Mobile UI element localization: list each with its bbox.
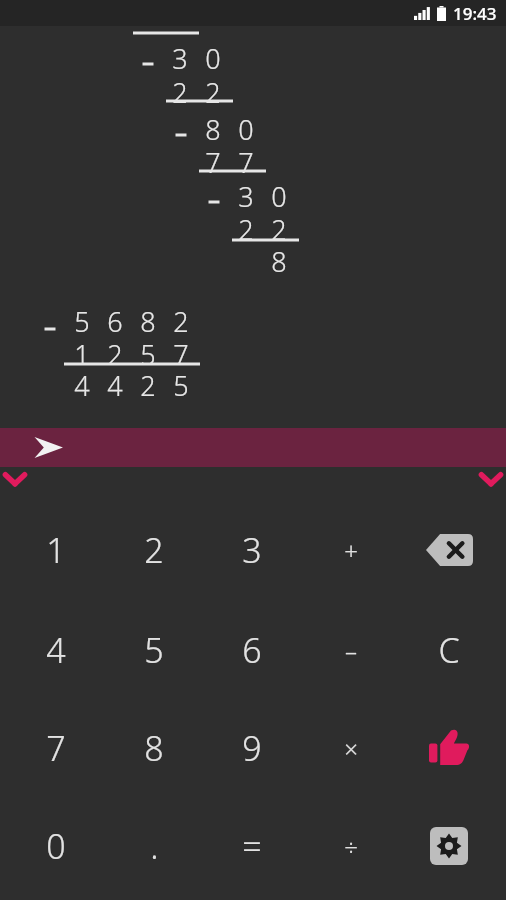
staticText: 5	[144, 627, 164, 673]
button[interactable]: ÷	[302, 797, 400, 895]
staticText: 0	[263, 178, 295, 215]
button[interactable]: 4	[7, 601, 105, 699]
button[interactable]: =	[203, 797, 301, 895]
staticText: 2	[144, 527, 164, 573]
button[interactable]: Expression input	[0, 428, 506, 467]
staticText: 0	[197, 40, 229, 77]
button[interactable]: +	[302, 501, 400, 599]
button[interactable]: Confirm	[400, 699, 498, 797]
button[interactable]: 3	[203, 501, 301, 599]
staticText: 8	[144, 725, 164, 771]
staticText: 5	[165, 367, 197, 404]
staticText: 9	[242, 725, 262, 771]
staticText: 3	[164, 40, 196, 77]
button[interactable]: –	[302, 601, 400, 699]
staticText: 6	[99, 303, 131, 340]
staticText: 2	[164, 74, 196, 111]
staticText: 8	[132, 303, 164, 340]
staticText: 5	[66, 303, 98, 340]
button[interactable]: 7	[7, 699, 105, 797]
staticText: 0	[46, 823, 66, 869]
staticText: 2	[263, 211, 295, 248]
staticText: ×	[344, 732, 358, 765]
button[interactable]: Previous expression	[0, 467, 30, 491]
staticText: 19:43	[453, 2, 497, 25]
staticText: 4	[46, 627, 66, 673]
button[interactable]: ×	[302, 699, 400, 797]
staticText: 7	[46, 725, 66, 771]
staticText: 0	[230, 111, 262, 148]
staticText: 6	[242, 627, 262, 673]
staticText: –	[345, 634, 357, 667]
staticText: C	[438, 627, 460, 673]
staticText: 7	[230, 144, 262, 181]
button[interactable]: 2	[105, 501, 203, 599]
button[interactable]: 9	[203, 699, 301, 797]
staticText: 2	[230, 211, 262, 248]
staticText: ÷	[344, 830, 358, 863]
button[interactable]: Clear	[400, 601, 498, 699]
staticText: .	[150, 823, 159, 869]
button[interactable]: 5	[105, 601, 203, 699]
staticText: 4	[99, 367, 131, 404]
staticText: 2	[197, 74, 229, 111]
staticText: 2	[132, 367, 164, 404]
staticText: 8	[197, 111, 229, 148]
staticText: =	[242, 823, 262, 869]
button[interactable]: 8	[105, 699, 203, 797]
staticText: 4	[66, 367, 98, 404]
staticText: 3	[242, 527, 262, 573]
staticText: 7	[197, 144, 229, 181]
button[interactable]: Backspace	[400, 501, 498, 599]
staticText: 5	[132, 336, 164, 373]
staticText: 1	[66, 336, 98, 373]
button[interactable]: 0	[7, 797, 105, 895]
staticText: 7	[165, 336, 197, 373]
button[interactable]: Settings	[400, 797, 498, 895]
button[interactable]: Next expression	[476, 467, 506, 491]
staticText: 2	[99, 336, 131, 373]
button[interactable]: 1	[7, 501, 105, 599]
button[interactable]: .	[105, 797, 203, 895]
staticText: 2	[165, 303, 197, 340]
staticText: 3	[230, 178, 262, 215]
staticText: 8	[263, 243, 295, 280]
button[interactable]: 6	[203, 601, 301, 699]
staticText: +	[344, 534, 358, 567]
staticText: 1	[46, 527, 66, 573]
